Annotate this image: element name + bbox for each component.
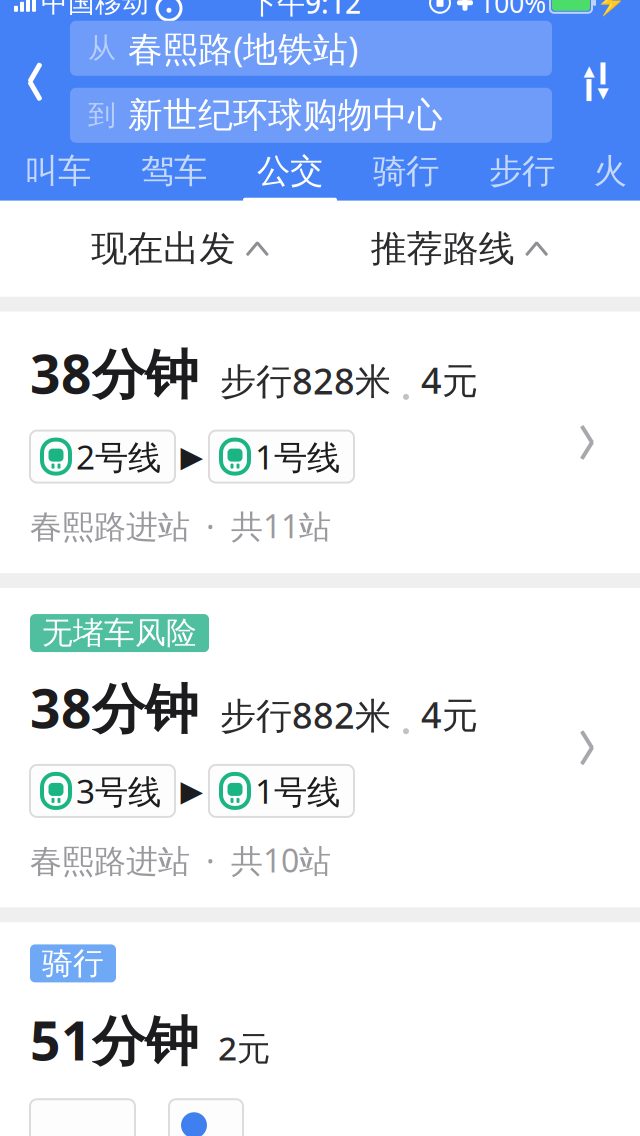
button[interactable]: 驾车	[127, 153, 221, 201]
staticText: ▲	[583, 62, 594, 79]
staticText: 38分钟	[30, 672, 198, 743]
button[interactable]: 叫车	[11, 153, 105, 201]
staticText: 骑行	[373, 151, 439, 192]
button[interactable]: 38分钟	[0, 312, 640, 573]
staticText: 51分钟	[30, 1004, 198, 1075]
staticText: 火	[593, 151, 626, 192]
staticText: 骑行	[42, 945, 104, 982]
staticText: 无堵车风险	[42, 614, 197, 652]
staticText: 2号线	[76, 434, 161, 479]
staticText: ⚡	[596, 0, 626, 16]
staticText: 2元	[218, 1025, 270, 1070]
button[interactable]: 从	[70, 21, 552, 76]
staticText: 下午9:12	[249, 0, 361, 21]
staticText: 3号线	[76, 769, 161, 813]
staticText: 1号线	[255, 434, 340, 479]
button[interactable]: 骑行	[0, 922, 640, 1136]
button[interactable]: 骑行	[359, 153, 453, 201]
button[interactable]: 推荐路线	[361, 201, 559, 297]
staticText: 38分钟	[30, 338, 198, 409]
staticText: 推荐路线	[371, 227, 515, 271]
button[interactable]: 交换起点终点	[552, 27, 640, 137]
button[interactable]: 现在出发	[81, 201, 279, 297]
staticText: 到	[88, 98, 116, 132]
staticText: 步行	[489, 151, 555, 192]
staticText: 4元	[421, 356, 478, 404]
staticText: 新世纪环球购物中心	[128, 94, 443, 137]
staticText: ▶	[180, 774, 203, 808]
staticText: ▼	[597, 84, 608, 101]
button[interactable]: 返回	[0, 27, 70, 137]
staticText: 1号线	[255, 769, 340, 813]
staticText: 步行882米	[220, 691, 391, 739]
staticText: 春熙路进站 · 共10站	[30, 839, 331, 881]
button[interactable]: 到	[70, 88, 552, 143]
button[interactable]: 公交	[243, 153, 337, 201]
staticText: 叫车	[25, 151, 91, 192]
staticText: 公交	[257, 151, 323, 192]
staticText: 中国移动	[41, 0, 149, 19]
staticText: 4元	[421, 690, 478, 738]
button[interactable]: 步行	[475, 153, 569, 201]
staticText: 驾车	[141, 151, 207, 192]
staticText: 步行828米	[220, 356, 391, 404]
button[interactable]: 火	[563, 153, 640, 201]
staticText: 从	[88, 31, 116, 65]
staticText: 春熙路进站 · 共11站	[30, 505, 331, 547]
staticText: 现在出发	[91, 227, 235, 271]
staticText: 春熙路(地铁站)	[128, 25, 358, 71]
staticText: 100%	[479, 0, 546, 20]
button[interactable]: 无堵车风险	[0, 588, 640, 907]
staticText: ▶	[180, 440, 203, 473]
